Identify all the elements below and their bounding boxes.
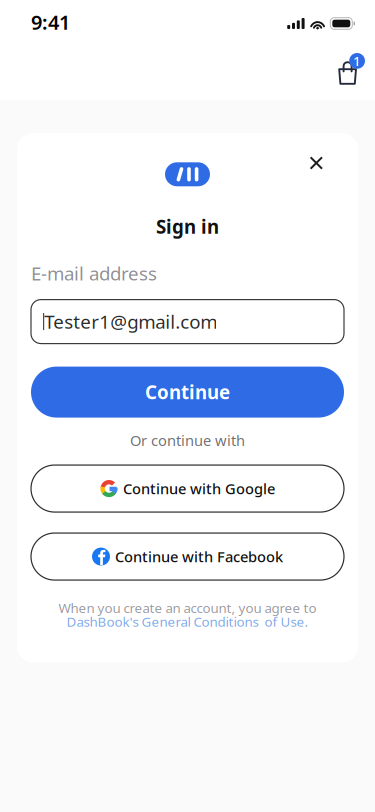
staticText: Or continue with — [130, 431, 245, 450]
staticText: DashBook's General Conditions of Use. — [66, 613, 308, 630]
button[interactable]: Continue with Google — [31, 465, 344, 512]
button[interactable]: Continue with Facebook — [31, 533, 344, 580]
staticText: Tester1@gmail.com — [44, 309, 217, 334]
button[interactable]: Continue — [31, 367, 344, 418]
staticText: 1 — [353, 52, 361, 70]
button[interactable]: Cart — [338, 53, 365, 84]
staticText: Continue with Google — [123, 479, 275, 498]
button[interactable]: Close — [304, 150, 329, 176]
staticText: Sign in — [156, 214, 219, 239]
staticText: E-mail address — [31, 261, 157, 286]
staticText: Continue with Facebook — [115, 547, 283, 566]
staticText: When you create an account, you agree to — [58, 599, 316, 617]
staticText: 9:41 — [31, 9, 70, 35]
staticText: Continue — [145, 380, 230, 404]
